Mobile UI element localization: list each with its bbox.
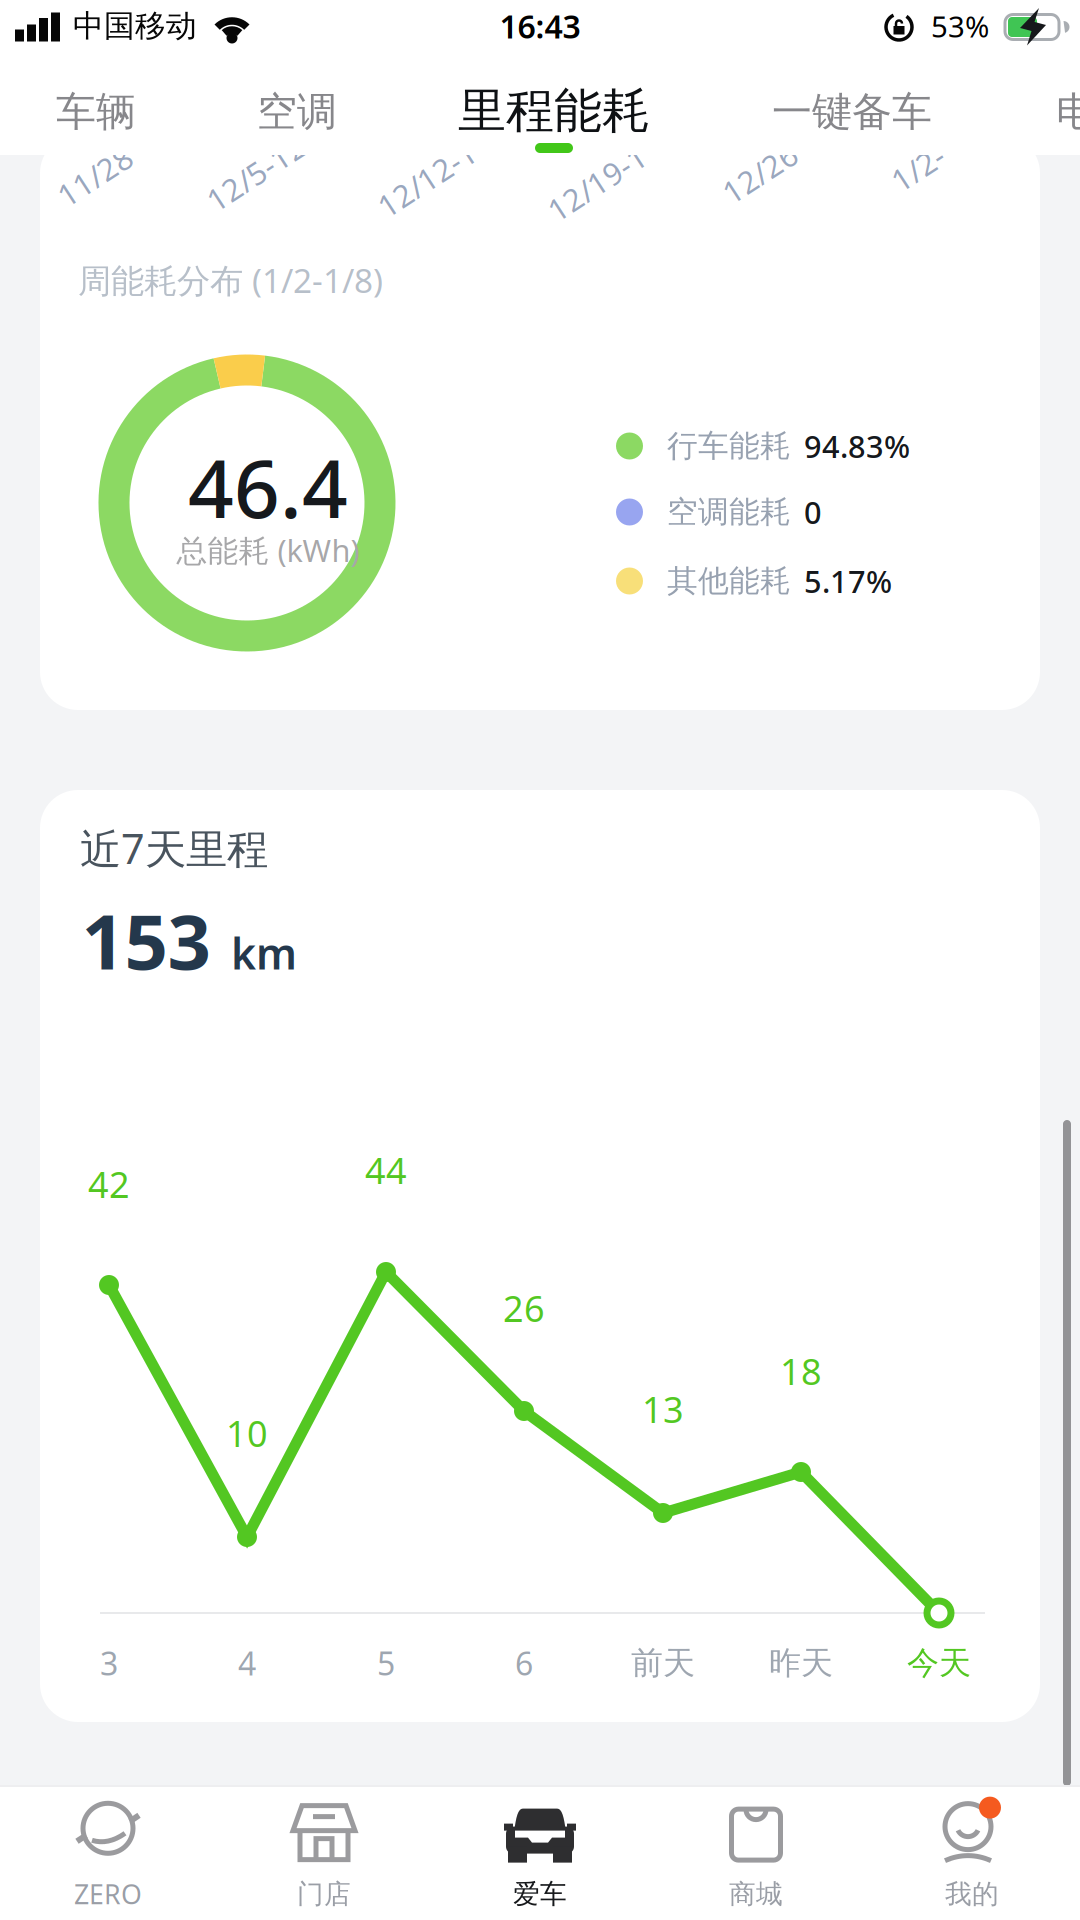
staticText: 里程能耗 (458, 81, 650, 140)
staticText: 昨天 (769, 1643, 833, 1683)
button[interactable]: ZERO (72, 1800, 144, 1912)
staticText: 18 (780, 1347, 822, 1395)
staticText: 5.17% (804, 561, 892, 601)
button[interactable]: 车辆 (56, 87, 136, 136)
staticText: 前天 (631, 1643, 695, 1683)
staticText: 10 (226, 1409, 268, 1457)
button[interactable]: 空调 (257, 87, 337, 136)
button[interactable]: 一键备车 (772, 87, 932, 136)
staticText: 商城 (729, 1878, 783, 1910)
staticText: 94.83% (804, 426, 910, 466)
staticText: 车辆 (56, 87, 136, 136)
staticText: 153 (81, 889, 210, 990)
staticText: 周能耗分布 (1/2-1/8) (78, 258, 383, 302)
staticText: 26 (503, 1284, 545, 1332)
staticText: 12/26 (718, 153, 801, 193)
staticText: 1/2- (889, 148, 946, 188)
staticText: 12/19-1 (541, 163, 652, 203)
staticText: 我的 (945, 1878, 999, 1910)
button[interactable]: 电池 (1056, 87, 1080, 136)
staticText: 空调 (257, 87, 337, 136)
staticText: 44 (365, 1146, 407, 1194)
staticText: km (231, 925, 297, 981)
staticText: 其他能耗 (667, 562, 791, 600)
button[interactable]: 爱车 (504, 1802, 576, 1910)
button[interactable]: 我的 (936, 1802, 1008, 1910)
staticText: 53% (931, 6, 989, 45)
staticText: 16:43 (499, 5, 580, 47)
staticText: 今天 (907, 1643, 971, 1683)
staticText: 空调能耗 (667, 493, 791, 531)
button[interactable]: 门店 (288, 1802, 360, 1910)
staticText: 5 (377, 1642, 395, 1684)
staticText: ZERO (74, 1876, 142, 1912)
staticText: 6 (515, 1642, 533, 1684)
button[interactable]: 商城 (720, 1802, 792, 1910)
staticText: 0 (804, 492, 822, 532)
staticText: 46.4 (188, 434, 348, 540)
staticText: 42 (88, 1160, 130, 1208)
staticText: 13 (642, 1385, 684, 1433)
staticText: 近7天里程 (80, 821, 268, 875)
staticText: 3 (100, 1642, 118, 1684)
staticText: 总能耗 (kWh) (176, 530, 359, 570)
staticText: 12/12-1 (371, 159, 482, 199)
staticText: 门店 (297, 1878, 351, 1910)
staticText: 4 (238, 1642, 256, 1684)
staticText: 12/5-12 (200, 153, 311, 193)
staticText: 一键备车 (772, 87, 932, 136)
staticText: 电池 (1056, 87, 1080, 136)
staticText: 中国移动 (73, 7, 197, 45)
staticText: 行车能耗 (667, 427, 791, 465)
staticText: 11/28 (53, 156, 136, 196)
staticText: 爱车 (513, 1878, 567, 1910)
button[interactable]: 里程能耗 (458, 81, 650, 140)
